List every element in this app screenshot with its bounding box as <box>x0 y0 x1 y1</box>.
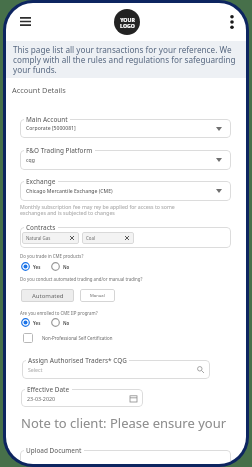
staticText: Yes <box>33 264 41 270</box>
staticText: Monthly subscription fee may rey be appl… <box>20 203 180 217</box>
button[interactable]: Assign authorised traders <box>22 360 210 379</box>
button[interactable]: Chicago Mercantile Exchange (CME) <box>20 181 231 201</box>
staticText: Natural Gas <box>26 235 51 241</box>
staticText: Account Details <box>12 85 66 95</box>
button[interactable]: Upload document <box>20 450 231 464</box>
button[interactable]: Automated <box>21 289 74 302</box>
button[interactable]: 23-03-2020 <box>21 389 143 407</box>
staticText: Effective Date <box>27 385 70 394</box>
staticText: Are you enrolled to CME IIP program? <box>20 310 98 316</box>
button[interactable]: Coal <box>82 232 134 244</box>
staticText: Select <box>28 366 43 373</box>
staticText: Non-Professional Self Certification <box>42 335 113 341</box>
staticText: Do you trade in CME products? <box>20 253 84 259</box>
button[interactable]: Natural Gas <box>22 232 79 244</box>
button[interactable]: No <box>51 318 70 327</box>
staticText: Corporate [5000081] <box>26 125 76 132</box>
button[interactable]: cqg <box>20 150 231 170</box>
button[interactable]: No <box>51 262 70 271</box>
staticText: 23-03-2020 <box>27 395 56 402</box>
button[interactable]: Non-Professional Self Certification <box>23 333 113 343</box>
staticText: No <box>63 320 70 326</box>
staticText: Yes <box>33 320 41 326</box>
button[interactable]: Yes <box>21 318 41 327</box>
staticText: YOUR LOGO <box>120 16 135 29</box>
button[interactable]: Yes <box>21 262 41 271</box>
staticText: Automated <box>32 292 64 300</box>
staticText: Do you conduct automated trading and/or … <box>20 276 143 282</box>
staticText: Contracts <box>26 223 56 232</box>
staticText: Main Account <box>26 115 68 124</box>
staticText: Manual <box>90 293 105 299</box>
staticText: Assign Authorised Traders* CQG <box>28 356 127 365</box>
staticText: No <box>63 264 70 270</box>
staticText: Note to client: Please ensure your <box>21 414 227 432</box>
button[interactable]: Manual <box>80 289 115 302</box>
button[interactable]: Menu <box>17 13 34 30</box>
staticText: This page list all your transactions for… <box>13 44 236 76</box>
staticText: F&O Trading Platform <box>26 146 93 155</box>
button[interactable]: Natural Gas <box>20 227 231 248</box>
staticText: Exchange <box>26 177 56 186</box>
staticText: cqg <box>26 157 35 164</box>
staticText: Coal <box>86 235 96 241</box>
button[interactable]: Your logo <box>114 9 140 35</box>
button[interactable]: Corporate [5000081] <box>20 119 231 138</box>
button[interactable]: More options <box>223 13 240 30</box>
staticText: Chicago Mercantile Exchange (CME) <box>26 188 113 195</box>
staticText: Upload Document <box>26 446 82 455</box>
